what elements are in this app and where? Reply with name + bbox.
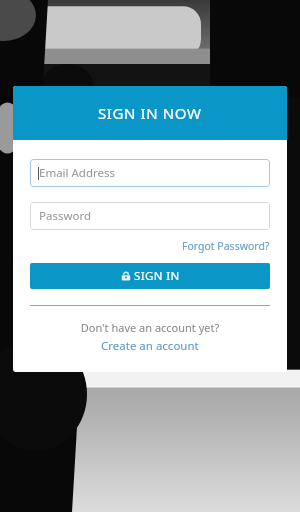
staticText: SIGN IN NOW <box>98 103 202 123</box>
staticText: Don't have an account yet? <box>30 320 270 335</box>
button[interactable]: Lock <box>30 263 270 289</box>
staticText: Create an account <box>101 338 199 354</box>
staticText: SIGN IN <box>134 268 180 284</box>
staticText: Forgot Password? <box>182 239 270 253</box>
button[interactable]: Password <box>30 202 270 230</box>
button[interactable]: Email Address <box>30 159 270 187</box>
button[interactable]: Create an account <box>97 337 203 355</box>
staticText: Password <box>39 208 92 224</box>
button[interactable]: Forgot Password? <box>182 237 270 255</box>
other: Lock <box>121 271 131 281</box>
staticText: Email Address <box>39 165 116 181</box>
